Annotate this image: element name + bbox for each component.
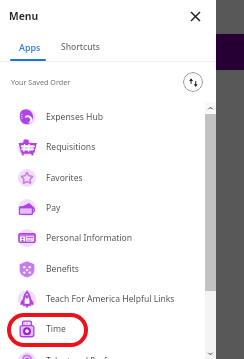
staticText: Menu xyxy=(9,9,39,23)
button[interactable]: Teach For America Helpful Links xyxy=(0,284,216,314)
button[interactable]: Pay xyxy=(0,193,216,223)
staticText: Shortcuts xyxy=(61,41,100,53)
staticText: Expenses Hub xyxy=(46,111,104,123)
staticText: Requisitions xyxy=(46,141,96,153)
button[interactable]: Expenses Hub xyxy=(0,102,216,132)
staticText: Pay xyxy=(46,202,61,214)
button[interactable]: Time xyxy=(0,314,216,344)
button[interactable]: Personal Information xyxy=(0,223,216,253)
button[interactable]: Shortcuts xyxy=(59,33,102,62)
button[interactable]: Reorder saved apps xyxy=(183,72,203,92)
button[interactable]: Favorites xyxy=(0,163,216,193)
button[interactable]: Benefits xyxy=(0,254,216,284)
staticText: Time xyxy=(46,323,66,335)
staticText: Personal Information xyxy=(46,232,133,244)
staticText: Favorites xyxy=(46,172,83,184)
button[interactable]: Scroll up xyxy=(205,102,216,114)
button[interactable]: Scroll down xyxy=(205,347,216,359)
staticText: Talent and Performance xyxy=(46,355,143,359)
staticText: Apps xyxy=(19,41,41,53)
button[interactable]: Talent and Performance xyxy=(0,346,216,359)
staticText: Benefits xyxy=(46,263,79,275)
button[interactable]: Requisitions xyxy=(0,132,216,162)
button[interactable]: Close menu xyxy=(186,7,204,25)
button[interactable]: Apps xyxy=(4,33,56,62)
staticText: Your Saved Order xyxy=(11,77,71,87)
staticText: Teach For America Helpful Links xyxy=(46,293,175,305)
